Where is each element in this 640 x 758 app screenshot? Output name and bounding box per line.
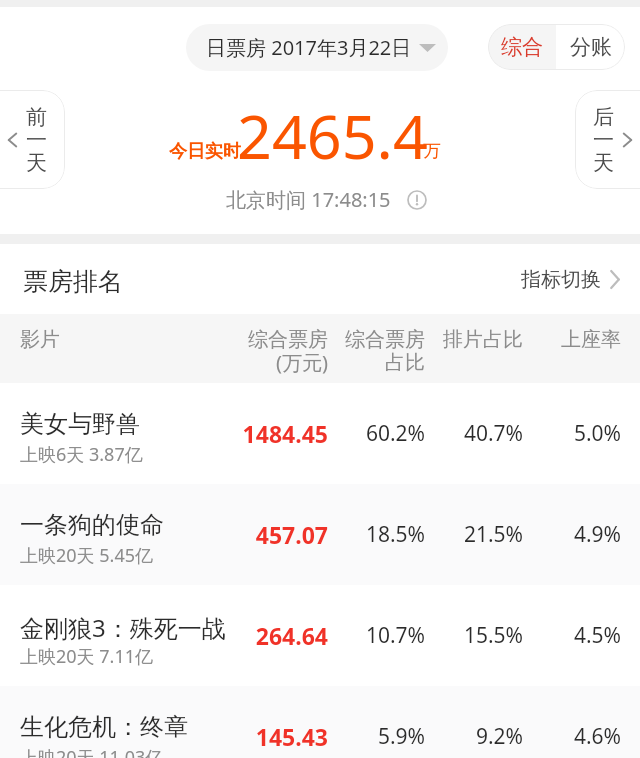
staticText: 4.6% [523,722,621,751]
staticText: 排片占比 [425,327,523,352]
staticText: 4.5% [523,621,621,650]
staticText: 5.0% [523,419,621,448]
staticText: 万 [423,140,441,163]
button[interactable]: 说明 [407,190,427,210]
button[interactable]: 一条狗的使命 [0,484,640,585]
button[interactable]: 后一天 [575,90,640,189]
staticText: 今日实时 [169,140,241,163]
button[interactable]: 金刚狼3：殊死一战 [0,585,640,686]
staticText: 2465.4 [237,94,428,177]
staticText: 一条狗的使命 [20,510,164,540]
button[interactable]: 日票房 2017年3月22日 [186,24,448,71]
staticText: 40.7% [425,419,523,448]
staticText: 15.5% [425,621,523,650]
staticText: 影片 [20,327,60,352]
staticText: 145.43 [198,721,328,752]
staticText: 上映6天 3.87亿 [20,442,143,467]
staticText: 9.2% [425,722,523,751]
staticText: 综合 [501,34,543,60]
staticText: 前 一 天 [26,104,47,176]
staticText: 1484.45 [198,418,328,449]
button[interactable]: 综合 [488,24,556,70]
staticText: 5.9% [328,722,425,751]
button[interactable]: 指标切换 [521,267,620,292]
button[interactable]: 分账 [556,24,625,70]
staticText: 上座率 [523,327,621,352]
staticText: 北京时间 17:48:15 [226,186,391,213]
staticText: 21.5% [425,520,523,549]
staticText: 457.07 [198,519,328,550]
staticText: 60.2% [328,419,425,448]
staticText: 上映20天 11.03亿 [20,745,164,758]
staticText: 分账 [570,34,612,60]
staticText: 综合票房 占比 [328,327,425,375]
staticText: 金刚狼3：殊死一战 [20,611,226,644]
staticText: 上映20天 5.45亿 [20,543,153,568]
staticText: 上映20天 7.11亿 [20,644,153,669]
staticText: 生化危机：终章 [20,712,188,742]
button[interactable]: 生化危机：终章 [0,686,640,758]
button[interactable]: 美女与野兽 [0,383,640,484]
button[interactable]: 前一天 [0,90,65,189]
staticText: 后 一 天 [593,104,614,176]
staticText: 美女与野兽 [20,409,140,439]
staticText: 10.7% [328,621,425,650]
staticText: 票房排名 [23,266,123,297]
staticText: 日票房 2017年3月22日 [206,34,412,61]
staticText: 综合票房 (万元) [208,327,328,376]
staticText: 18.5% [328,520,425,549]
staticText: 4.9% [523,520,621,549]
staticText: 264.64 [198,620,328,651]
staticText: 指标切换 [521,267,601,292]
